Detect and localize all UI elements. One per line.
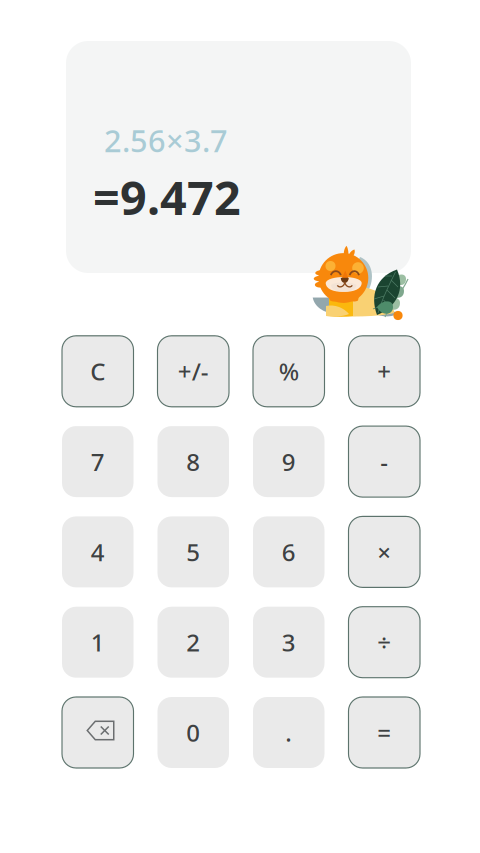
staticText: 8 [186,446,200,478]
button[interactable]: - [348,426,420,497]
button[interactable]: 1 [62,607,133,678]
button[interactable]: 7 [62,426,133,497]
button[interactable]: 0 [157,697,229,768]
button[interactable] [62,697,133,768]
staticText: ÷ [377,626,391,658]
button[interactable]: = [348,697,420,768]
staticText: +/- [178,355,209,387]
staticText: + [377,355,391,387]
staticText: 6 [282,536,296,568]
button[interactable]: 8 [157,426,229,497]
staticText: % [279,355,299,387]
button[interactable]: 6 [253,516,324,587]
button[interactable]: 9 [253,426,324,497]
staticText: 4 [91,536,105,568]
button[interactable]: . [253,697,324,768]
button[interactable]: 5 [157,516,229,587]
button[interactable]: + [348,336,420,407]
button[interactable]: % [253,336,324,407]
staticText: 2.56×3.7 [104,120,228,161]
button[interactable]: C [62,336,133,407]
button[interactable]: 2 [157,607,229,678]
staticText: 9 [282,446,296,478]
button[interactable]: 3 [253,607,324,678]
staticText: . [285,717,292,748]
staticText: 2 [186,626,200,658]
staticText: 3 [282,626,296,658]
button[interactable]: 4 [62,516,133,587]
staticText: =9.472 [93,166,241,228]
staticText: 1 [91,626,105,658]
staticText: - [380,446,388,478]
staticText: 5 [186,536,200,568]
staticText: × [377,536,391,568]
staticText: = [377,717,391,748]
staticText: 0 [186,717,200,748]
button[interactable]: ÷ [348,607,420,678]
staticText: C [90,355,105,387]
button[interactable]: +/- [157,336,229,407]
button[interactable]: × [348,516,420,587]
staticText: 7 [91,446,105,478]
